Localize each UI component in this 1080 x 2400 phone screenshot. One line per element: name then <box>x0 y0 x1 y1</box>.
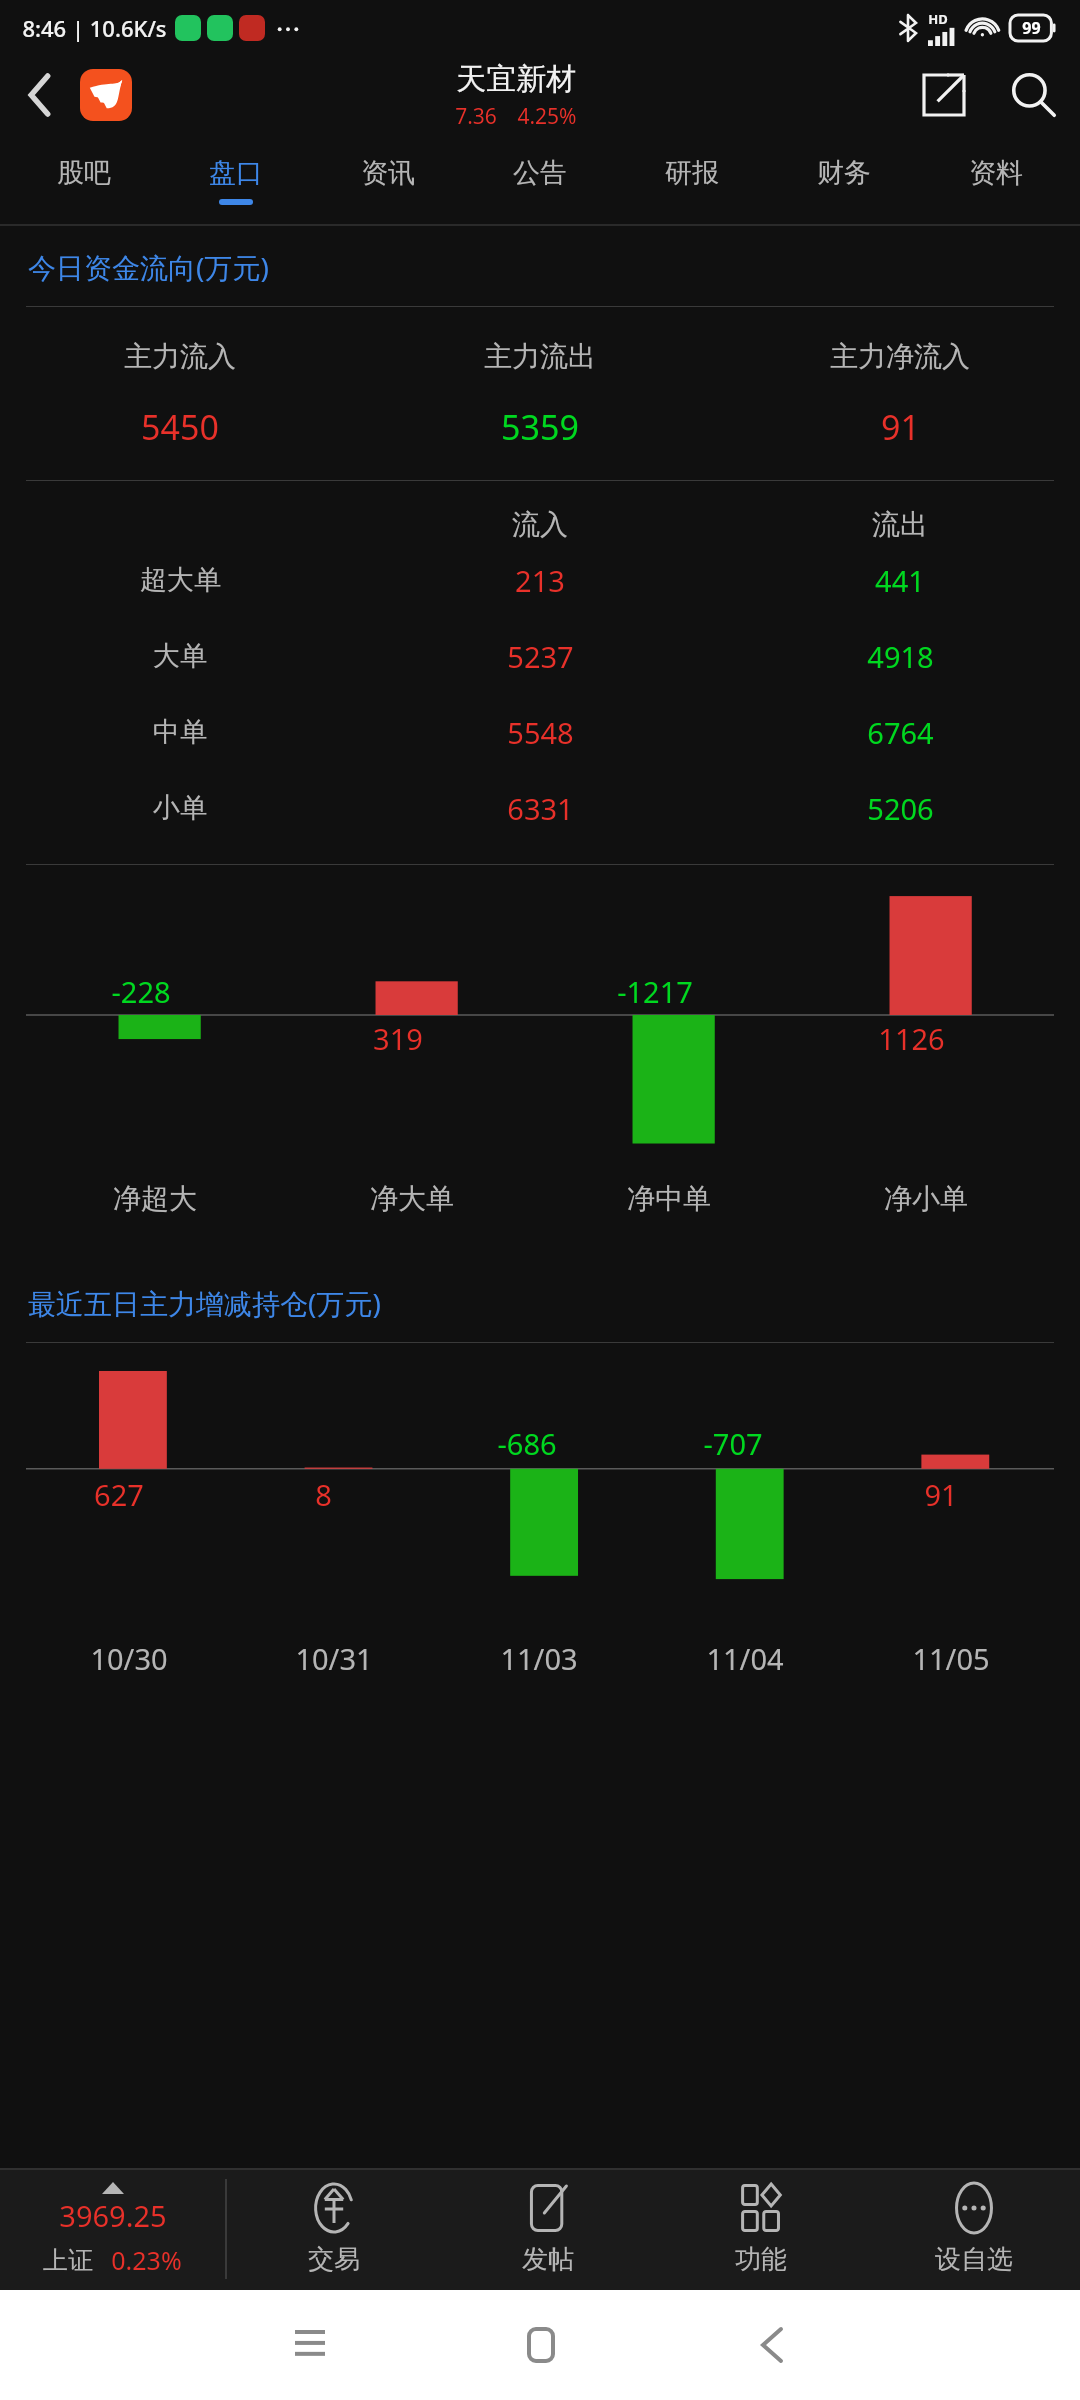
staticText: 净中单 <box>627 1181 711 1216</box>
staticText: 10/30 <box>90 1639 168 1678</box>
staticText: 5206 <box>867 789 934 828</box>
button[interactable]: 发帖 <box>441 2168 654 2290</box>
staticText: 研报 <box>665 156 719 190</box>
button[interactable]: 设自选 <box>867 2168 1080 2290</box>
staticText: 天宜新材 <box>456 60 576 98</box>
button[interactable]: Share <box>900 56 988 134</box>
staticText: 主力净流入 <box>830 339 970 374</box>
button[interactable]: 盘口 <box>160 134 312 226</box>
staticText: 319 <box>373 1019 423 1058</box>
staticText: 交易 <box>308 2243 360 2276</box>
staticText: 净小单 <box>884 1181 968 1216</box>
staticText: 6331 <box>507 789 574 828</box>
staticText: 99 <box>1022 17 1041 39</box>
staticText: 3969.25 <box>59 2196 167 2235</box>
button[interactable]: 小单 <box>0 770 1080 846</box>
staticText: 上证 <box>43 2245 93 2276</box>
staticText: 4.25% <box>517 102 577 131</box>
staticText: 6764 <box>867 713 934 752</box>
staticText: 超大单 <box>140 563 221 597</box>
staticText: 资讯 <box>361 156 415 190</box>
staticText: 5237 <box>507 637 574 676</box>
button[interactable]: 功能 <box>654 2168 867 2290</box>
button[interactable]: 资讯 <box>312 134 464 226</box>
staticText: 441 <box>875 561 925 600</box>
staticText: 大单 <box>153 639 207 673</box>
button[interactable]: 超大单 <box>0 542 1080 618</box>
staticText: 流入 <box>512 507 568 542</box>
staticText: 1126 <box>878 1019 945 1058</box>
staticText: 5548 <box>507 713 574 752</box>
button[interactable]: App logo <box>80 69 132 121</box>
button[interactable]: 中单 <box>0 694 1080 770</box>
staticText: 5359 <box>501 404 579 450</box>
button[interactable]: 股吧 <box>8 134 160 226</box>
staticText: 公告 <box>513 156 567 190</box>
button[interactable]: 公告 <box>464 134 616 226</box>
button[interactable]: 资料 <box>920 134 1072 226</box>
button[interactable]: 交易 <box>227 2168 441 2290</box>
button[interactable]: 3969.25 <box>0 2168 225 2290</box>
staticText: 功能 <box>735 2243 787 2276</box>
staticText: 91 <box>924 1475 958 1514</box>
staticText: 91 <box>881 404 920 450</box>
staticText: -707 <box>703 1424 763 1463</box>
staticText: 中单 <box>153 715 207 749</box>
staticText: -1217 <box>617 972 693 1011</box>
staticText: 今日资金流向(万元) <box>28 248 269 286</box>
button[interactable]: Recents <box>194 2290 425 2400</box>
staticText: -228 <box>111 972 171 1011</box>
staticText: 最近五日主力增减持仓(万元) <box>28 1284 381 1322</box>
button[interactable]: 大单 <box>0 618 1080 694</box>
button[interactable]: 研报 <box>616 134 768 226</box>
staticText: 小单 <box>153 791 207 825</box>
staticText: 主力流入 <box>124 339 236 374</box>
staticText: 资料 <box>969 156 1023 190</box>
staticText: 10/31 <box>295 1639 373 1678</box>
button[interactable]: Search <box>988 56 1080 134</box>
staticText: 8:46 | 10.6K/s <box>22 13 167 43</box>
staticText: 净超大 <box>113 1181 197 1216</box>
staticText: 设自选 <box>935 2243 1013 2276</box>
staticText: 0.23% <box>111 2243 182 2277</box>
staticText: 主力流出 <box>484 339 596 374</box>
staticText: 财务 <box>817 156 871 190</box>
staticText: 发帖 <box>522 2243 574 2276</box>
staticText: 盘口 <box>209 156 263 190</box>
button[interactable]: Back <box>0 56 80 134</box>
staticText: HD <box>928 10 948 28</box>
staticText: -686 <box>497 1424 557 1463</box>
staticText: 5450 <box>141 404 219 450</box>
staticText: 4918 <box>867 637 934 676</box>
staticText: 11/05 <box>912 1639 990 1678</box>
staticText: 627 <box>94 1475 144 1514</box>
staticText: 股吧 <box>57 156 111 190</box>
button[interactable]: 财务 <box>768 134 920 226</box>
staticText: 8 <box>315 1475 332 1514</box>
staticText: 净大单 <box>370 1181 454 1216</box>
staticText: 7.36 <box>455 102 497 131</box>
staticText: 11/04 <box>706 1639 784 1678</box>
button[interactable]: Home <box>425 2290 656 2400</box>
staticText: 流出 <box>872 507 928 542</box>
staticText: 11/03 <box>500 1639 578 1678</box>
staticText: 213 <box>515 561 565 600</box>
button[interactable]: Back <box>656 2290 887 2400</box>
